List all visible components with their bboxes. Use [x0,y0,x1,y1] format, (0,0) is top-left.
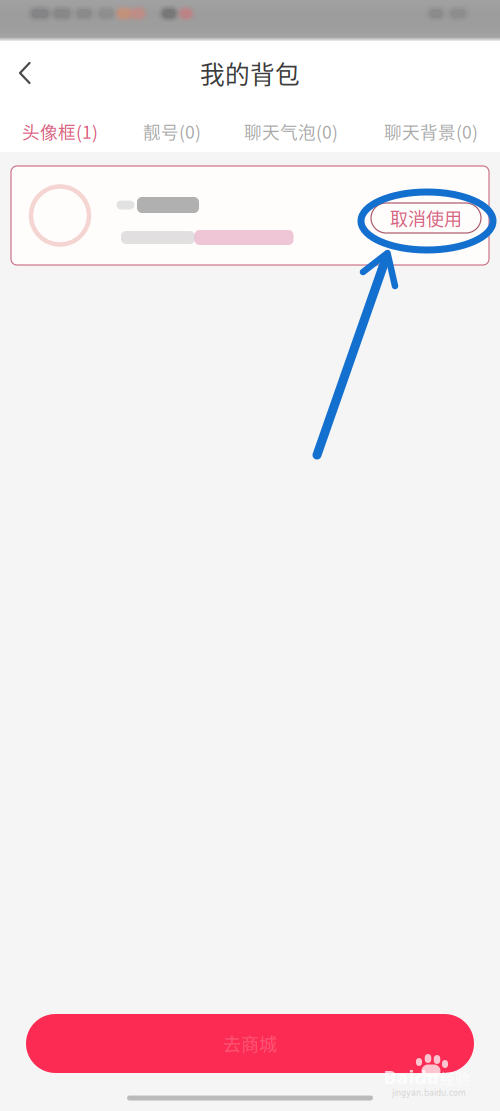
staticText: 去商城 [223,1030,277,1057]
staticText: jingyan.baidu.com [392,1088,466,1098]
staticText: 取消使用 [390,205,462,231]
staticText: 我的背包 [200,55,300,91]
staticText: 经验 [440,1067,470,1089]
button[interactable]: 去商城 [26,1014,474,1073]
button[interactable]: 靓号(0) [112,108,232,154]
staticText: 头像框(1) [22,118,98,144]
button[interactable]: Back [0,47,51,99]
button[interactable]: 头像框(1) [0,108,120,154]
staticText: 聊天气泡(0) [244,118,338,144]
button[interactable]: 取消使用 [371,203,481,233]
button[interactable]: 聊天背景(0) [371,108,491,154]
button[interactable]: 聊天气泡(0) [231,108,351,154]
staticText: 靓号(0) [143,118,201,144]
staticText: Baidu [383,1068,438,1088]
staticText: 聊天背景(0) [384,118,478,144]
